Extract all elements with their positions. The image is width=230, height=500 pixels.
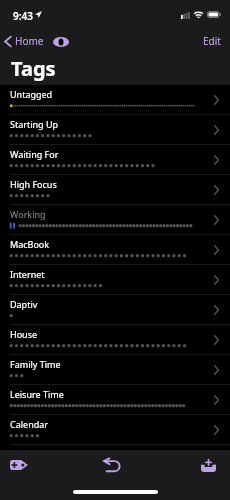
- button[interactable]: Edit: [195, 29, 229, 53]
- button[interactable]: Starting Up: [0, 115, 230, 145]
- button[interactable]: Family Time: [0, 355, 230, 385]
- button[interactable]: Working: [0, 205, 230, 235]
- staticText: Home: [15, 34, 44, 48]
- button[interactable]: House: [0, 325, 230, 355]
- button[interactable]: Waiting For: [0, 145, 230, 175]
- staticText: High Focus: [10, 178, 57, 190]
- button[interactable]: MacBook: [0, 235, 230, 265]
- button[interactable]: Show hidden tags: [49, 31, 73, 53]
- staticText: Internet: [10, 268, 45, 280]
- button[interactable]: High Focus: [0, 175, 230, 205]
- button[interactable]: Home: [1, 32, 47, 50]
- button[interactable]: Daptiv: [0, 295, 230, 325]
- staticText: MacBook: [10, 238, 50, 250]
- staticText: Starting Up: [10, 118, 59, 130]
- staticText: Edit: [203, 34, 221, 48]
- button[interactable]: Undo: [98, 452, 126, 478]
- button[interactable]: Leisure Time: [0, 385, 230, 415]
- staticText: Daptiv: [10, 298, 38, 310]
- staticText: Family Time: [10, 358, 61, 370]
- staticText: House: [10, 328, 38, 340]
- staticText: Leisure Time: [10, 388, 64, 400]
- button[interactable]: New tag: [3, 452, 35, 478]
- button[interactable]: Internet: [0, 265, 230, 295]
- button[interactable]: Calendar: [0, 415, 230, 445]
- button[interactable]: Untagged: [0, 85, 230, 115]
- staticText: Calendar: [10, 418, 48, 430]
- staticText: Waiting For: [10, 148, 59, 160]
- staticText: Tags: [11, 55, 56, 82]
- staticText: 9:43: [13, 9, 33, 23]
- staticText: Untagged: [10, 88, 53, 100]
- button[interactable]: Add to inbox: [193, 452, 223, 478]
- staticText: Working: [10, 208, 46, 220]
